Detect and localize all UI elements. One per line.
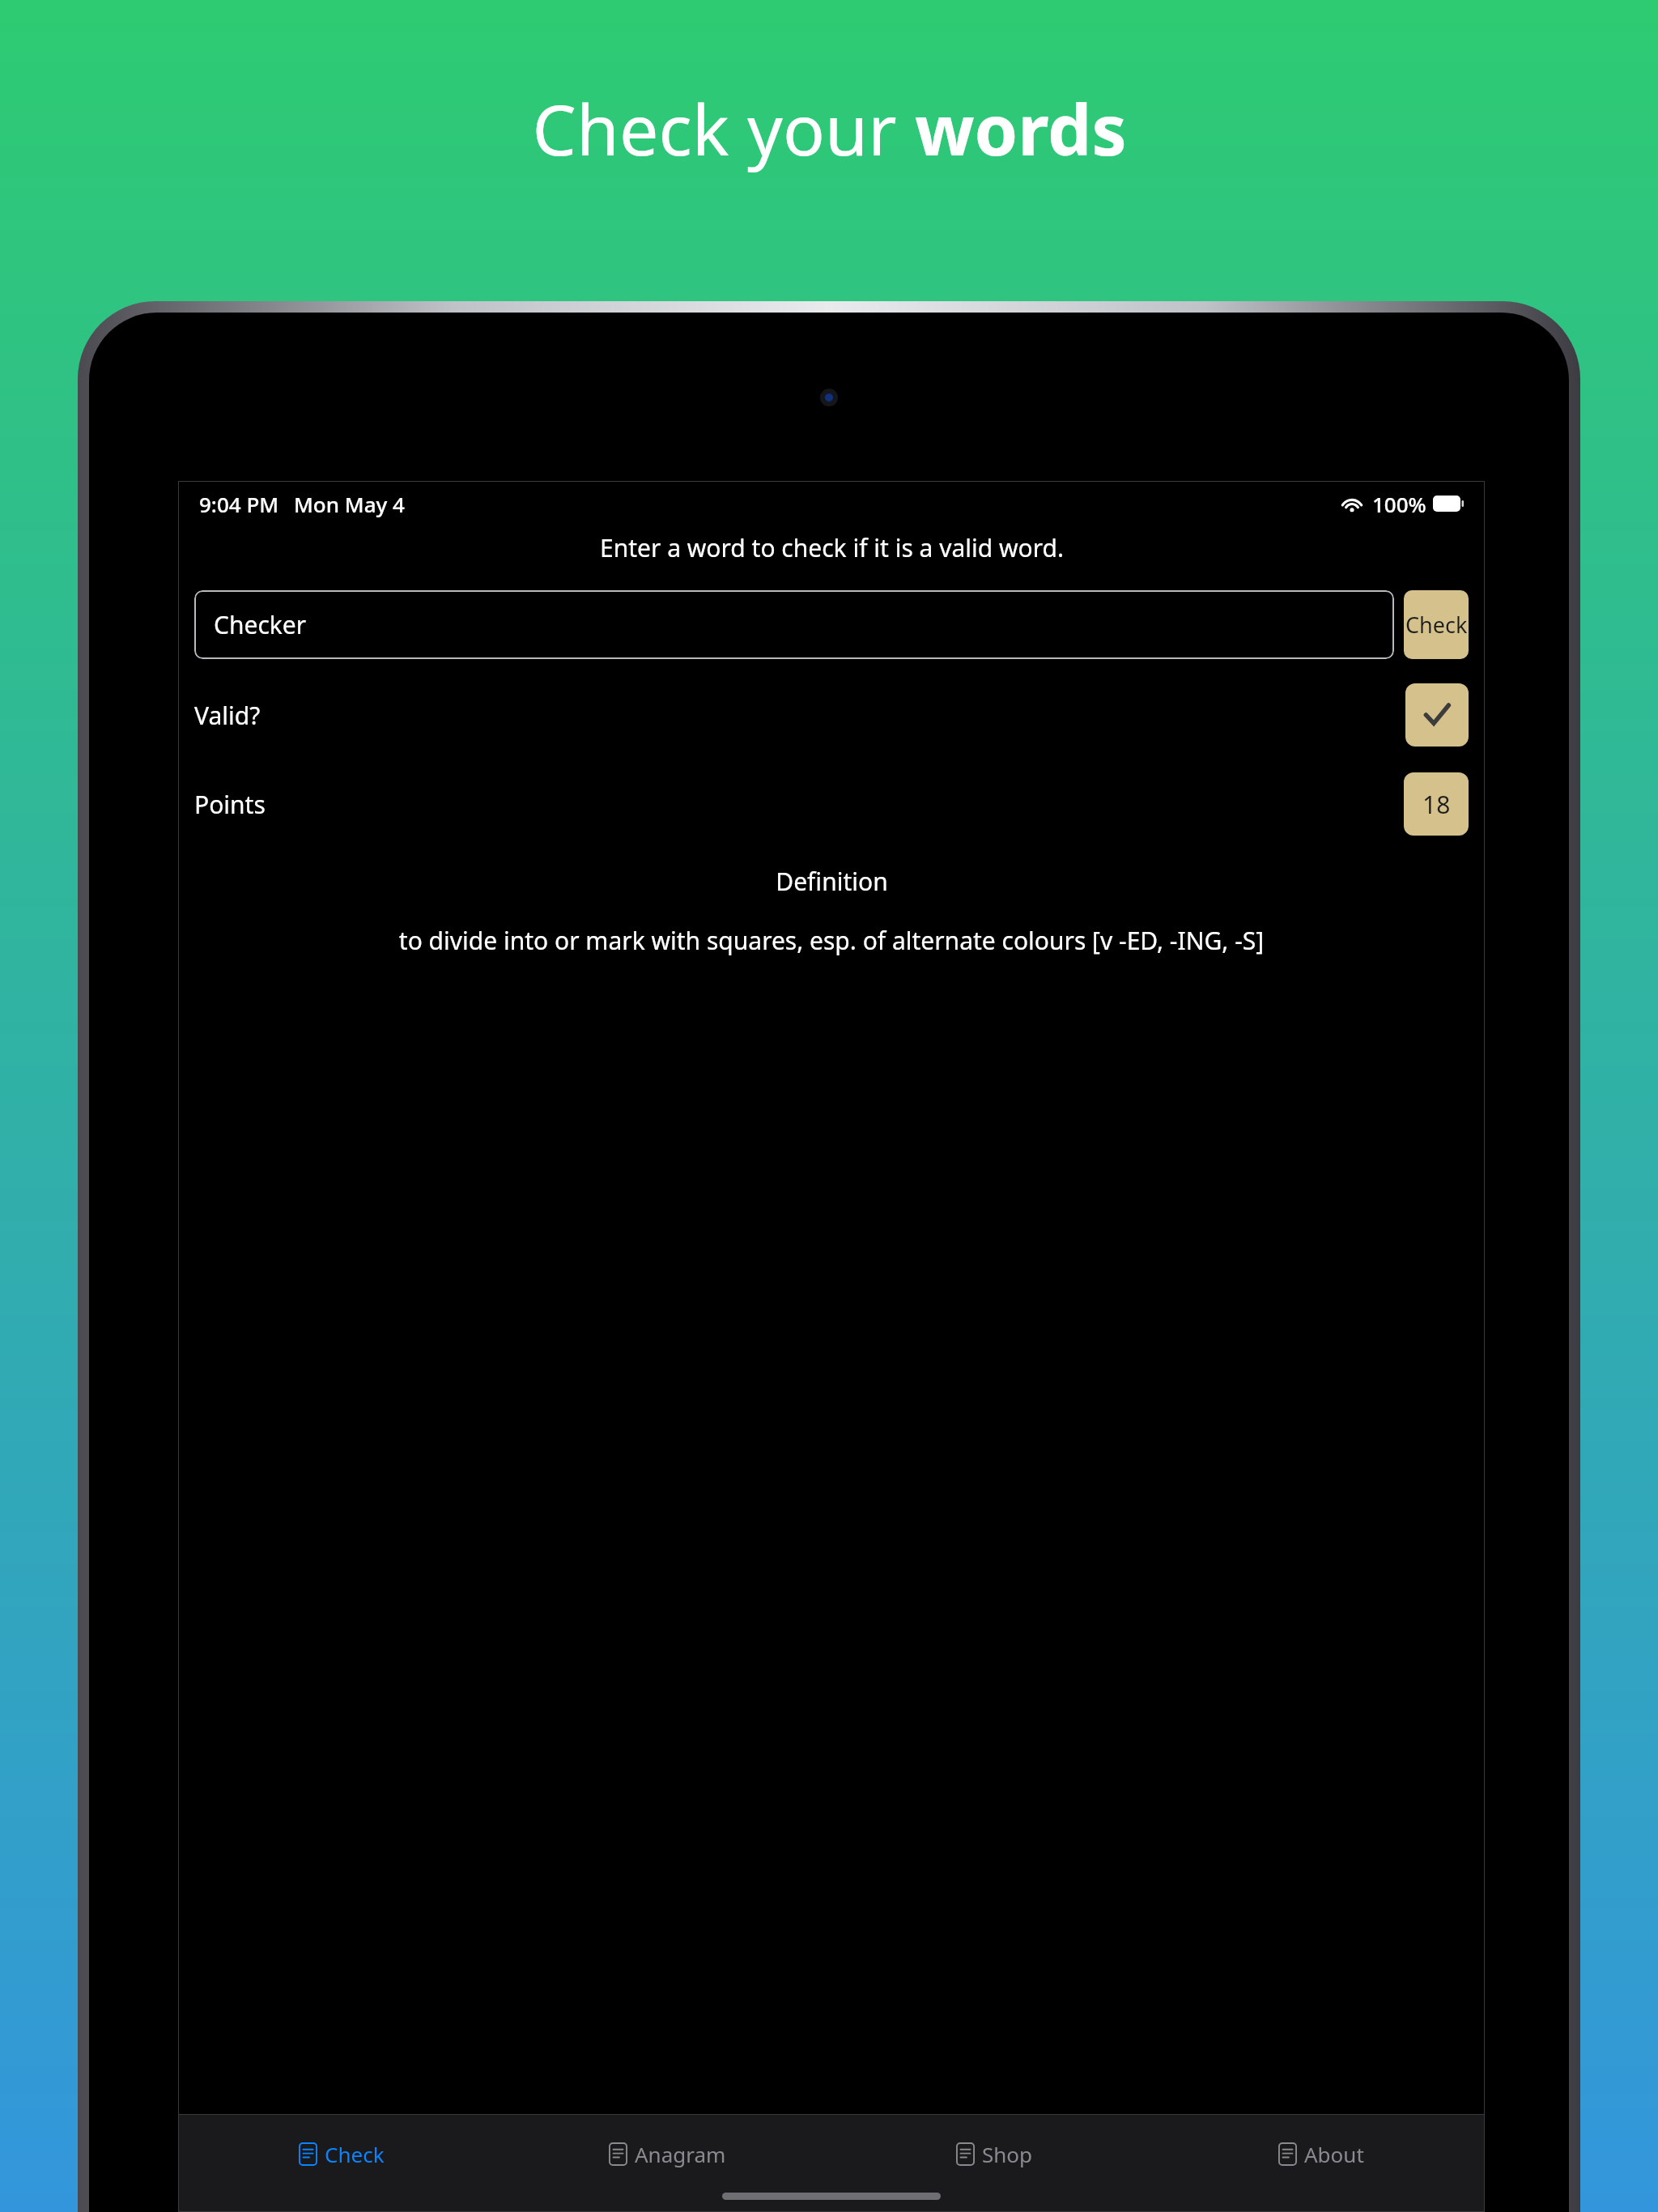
button[interactable]: About xyxy=(1158,2115,1485,2193)
staticText: Mon May 4 xyxy=(294,490,405,518)
button[interactable]: Anagram xyxy=(504,2115,831,2193)
staticText: 9:04 PM xyxy=(199,490,279,518)
staticText: Checker xyxy=(214,608,307,641)
button[interactable]: Valid word xyxy=(1405,683,1469,747)
staticText: Anagram xyxy=(635,2140,726,2168)
staticText: Valid? xyxy=(194,699,261,732)
button[interactable]: Checker xyxy=(194,590,1394,659)
staticText: About xyxy=(1304,2140,1364,2168)
button[interactable]: Check xyxy=(178,2115,504,2193)
button[interactable]: Shop xyxy=(831,2115,1158,2193)
staticText: to divide into or mark with squares, esp… xyxy=(210,924,1452,957)
staticText: 18 xyxy=(1422,788,1451,821)
staticText: Points xyxy=(194,788,266,821)
button[interactable]: 18 xyxy=(1404,772,1469,836)
staticText: Check xyxy=(1405,610,1468,640)
staticText: 100% xyxy=(1372,490,1426,518)
staticText: Enter a word to check if it is a valid w… xyxy=(600,531,1064,564)
staticText: Check xyxy=(325,2140,385,2168)
staticText: Shop xyxy=(982,2140,1033,2168)
staticText: Definition xyxy=(776,865,888,898)
staticText: Check your words xyxy=(532,81,1127,176)
button[interactable]: Check xyxy=(1404,590,1469,659)
